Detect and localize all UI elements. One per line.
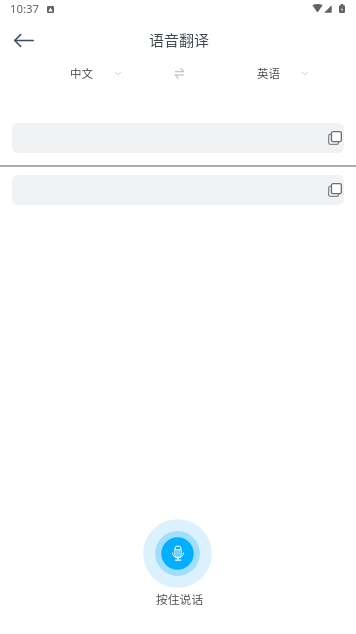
staticText: 语音翻译 — [149, 29, 210, 51]
button[interactable]: Back — [4, 20, 44, 60]
staticText: 10:37 — [10, 1, 40, 17]
staticText: 按住说话 — [156, 590, 204, 607]
button[interactable]: 中文 — [70, 60, 121, 87]
staticText: 中文 — [70, 65, 93, 82]
button[interactable]: Copy — [12, 175, 344, 205]
button[interactable]: Swap languages — [170, 60, 188, 87]
button[interactable]: 英语 — [257, 60, 308, 87]
button[interactable]: Copy — [325, 125, 344, 151]
button[interactable]: Copy — [325, 177, 344, 203]
button[interactable]: Hold to speak — [143, 519, 212, 588]
staticText: 英语 — [257, 65, 280, 82]
button[interactable]: Copy — [12, 123, 344, 153]
